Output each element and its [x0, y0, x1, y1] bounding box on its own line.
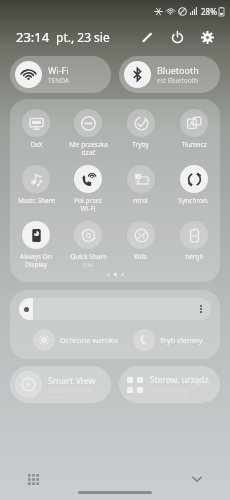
button[interactable]: Tryb ciemny	[133, 329, 203, 351]
staticText: Smart View	[48, 374, 96, 386]
staticText: Sterow. urządz.	[150, 374, 211, 386]
staticText: Synchron.	[178, 196, 209, 205]
button[interactable]: Music Share	[10, 163, 62, 207]
staticText: TENDA	[48, 76, 69, 85]
button[interactable]: Edit	[134, 24, 160, 50]
button[interactable]: Smart View	[10, 366, 111, 403]
staticText: Music Share	[18, 196, 55, 205]
button[interactable]: Kids	[114, 219, 167, 263]
button[interactable]: Wi-Fi	[10, 56, 111, 93]
staticText: Bluetooth	[157, 64, 199, 76]
staticText: ntrol	[133, 196, 148, 205]
staticText: Tryb ciemny	[160, 335, 203, 345]
button[interactable]: Synchron.	[167, 163, 220, 207]
button[interactable]: nergii	[167, 219, 220, 263]
button[interactable]: Quick Share	[62, 219, 114, 270]
staticText: Poł.przez Wi-Fi	[74, 196, 102, 213]
staticText: Tryby	[132, 140, 149, 149]
button[interactable]: DeX	[10, 107, 62, 151]
button[interactable]: Sterow. urządz.	[119, 366, 220, 403]
staticText: 23:14	[16, 28, 50, 46]
button[interactable]: Tłumacz	[167, 107, 220, 151]
staticText: DeX	[30, 140, 43, 149]
staticText: est Bluetooth	[157, 76, 198, 85]
button[interactable]: Nie przeszka dzać	[62, 107, 114, 159]
button[interactable]: ntrol	[114, 163, 167, 207]
button[interactable]: Always On Display	[10, 219, 62, 271]
staticText: Wi-Fi	[48, 64, 69, 76]
staticText: Odzwierciedlaj	[48, 386, 93, 395]
button[interactable]: Ochrona wzroku	[33, 329, 118, 351]
staticText: nergii	[185, 252, 203, 261]
staticText: pt., 23 sie	[56, 29, 110, 45]
staticText: Always On Display	[20, 252, 52, 269]
button[interactable]: Collapse	[186, 468, 208, 490]
staticText: Ochrona wzroku	[60, 335, 118, 345]
staticText: SmartThings	[150, 386, 189, 395]
staticText: Tłumacz	[181, 140, 207, 149]
button[interactable]	[19, 298, 211, 320]
staticText: Nie przeszka dzać	[69, 140, 108, 157]
staticText: Quick Share	[70, 252, 107, 261]
staticText: Kids	[134, 252, 147, 261]
button[interactable]: Bluetooth	[119, 56, 220, 93]
staticText: Nikt	[83, 261, 94, 268]
button[interactable]: Power	[164, 24, 190, 50]
button[interactable]: Poł.przez Wi-Fi	[62, 163, 114, 215]
button[interactable]: All settings	[22, 468, 44, 490]
button[interactable]: Tryby	[114, 107, 167, 151]
button[interactable]: Settings	[194, 24, 220, 50]
staticText: 28%	[201, 6, 217, 17]
